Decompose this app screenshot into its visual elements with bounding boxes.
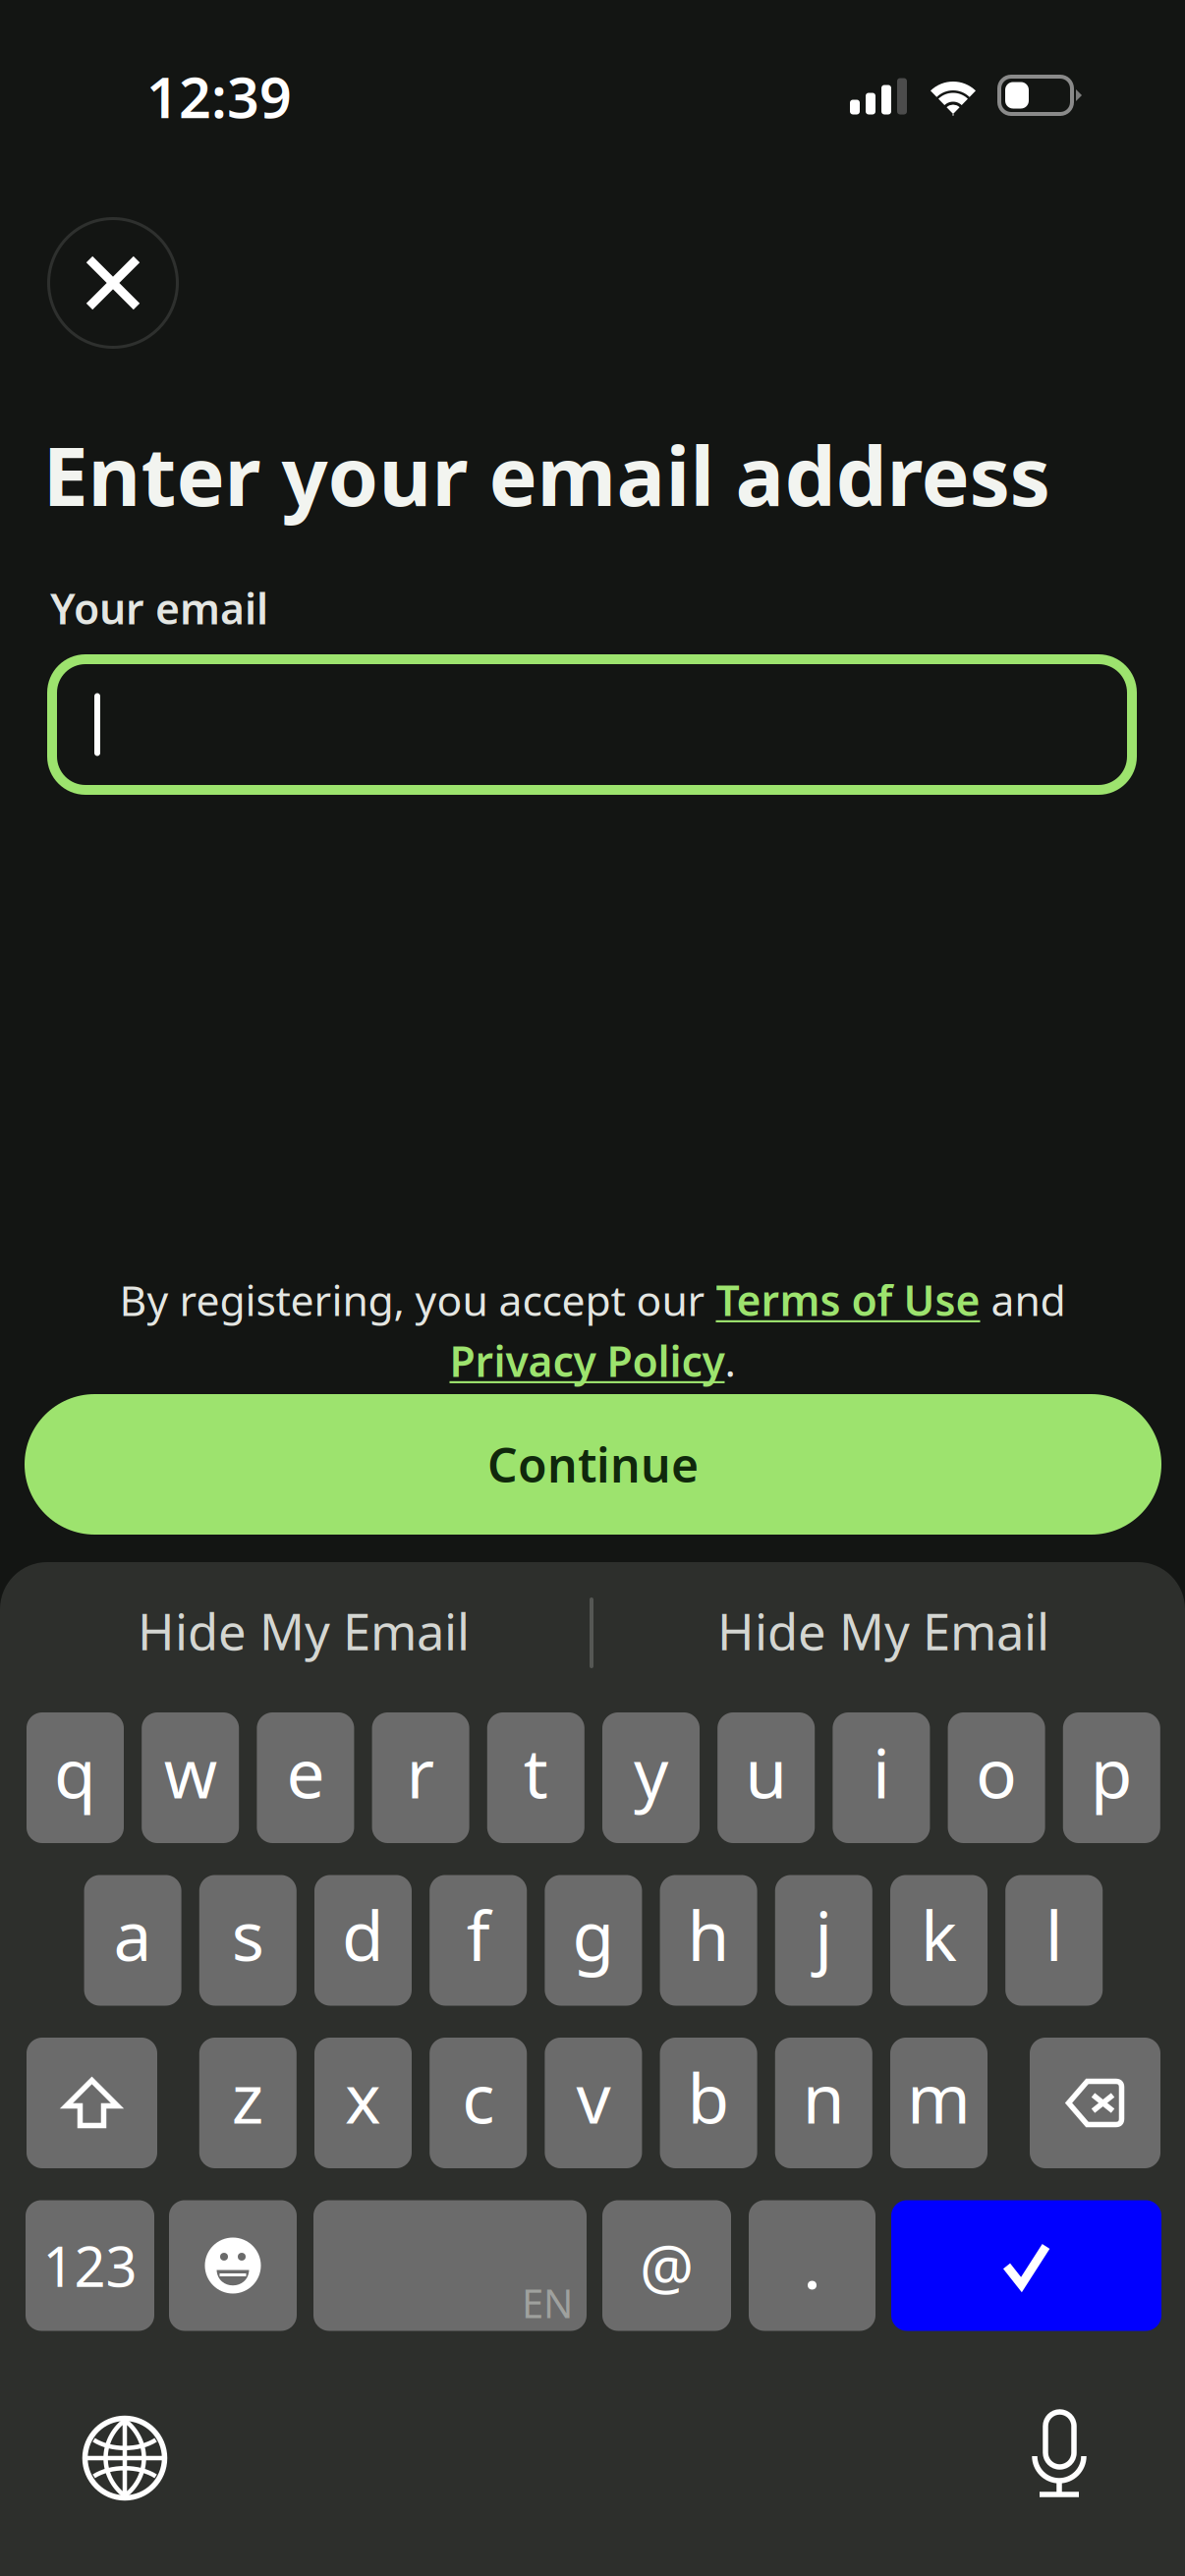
staticText: s [232, 1889, 264, 1980]
staticText: @ [640, 2226, 694, 2306]
button[interactable]: v [545, 2038, 642, 2168]
button[interactable]: f [430, 1875, 527, 2006]
button[interactable]: Shift [27, 2038, 157, 2168]
staticText: h [687, 1889, 730, 1980]
staticText: 12:39 [146, 59, 292, 134]
button[interactable]: h [660, 1875, 757, 2006]
staticText: w [164, 1727, 217, 1817]
button[interactable]: l [1005, 1875, 1103, 2006]
button[interactable]: j [775, 1875, 872, 2006]
staticText: r [406, 1727, 435, 1817]
staticText: x [345, 2052, 381, 2142]
button[interactable]: Space [313, 2200, 587, 2331]
staticText: b [687, 2052, 730, 2142]
staticText: and [980, 1272, 1066, 1328]
staticText: f [466, 1889, 490, 1980]
staticText: e [286, 1727, 325, 1817]
button[interactable]: Period [749, 2200, 875, 2331]
staticText: i [872, 1727, 890, 1817]
button[interactable]: Hide My Email [608, 1580, 1158, 1682]
button[interactable]: Dictation [1000, 2396, 1118, 2514]
button[interactable]: n [775, 2038, 872, 2168]
button[interactable]: Emoji [169, 2200, 297, 2331]
button[interactable]: Continue [25, 1394, 1161, 1535]
staticText: k [921, 1889, 957, 1980]
button[interactable]: x [314, 2038, 412, 2168]
staticText: z [232, 2052, 264, 2142]
button[interactable]: @ [602, 2200, 731, 2331]
button[interactable]: Delete [1030, 2038, 1160, 2168]
staticText: t [524, 1727, 548, 1817]
button[interactable]: z [199, 2038, 297, 2168]
button[interactable]: q [27, 1712, 124, 1843]
staticText: Hide My Email [717, 1598, 1049, 1664]
button[interactable]: Return [891, 2200, 1161, 2331]
button[interactable]: g [545, 1875, 642, 2006]
button[interactable]: a [84, 1875, 181, 2006]
staticText: n [803, 2052, 845, 2142]
button[interactable]: o [948, 1712, 1045, 1843]
staticText: By registering, you accept our [119, 1272, 716, 1328]
staticText: j [815, 1889, 833, 1980]
staticText: d [342, 1889, 384, 1980]
staticText: y [634, 1727, 668, 1817]
staticText: l [1045, 1889, 1063, 1980]
staticText: Hide My Email [138, 1598, 470, 1664]
staticText: EN [522, 2277, 573, 2329]
staticText: Privacy Policy [450, 1333, 725, 1389]
staticText: . [725, 1333, 735, 1389]
staticText: m [907, 2052, 971, 2142]
button[interactable]: Hide My Email [28, 1580, 579, 1682]
button[interactable]: i [833, 1712, 930, 1843]
button[interactable]: p [1063, 1712, 1160, 1843]
button[interactable]: Close [49, 219, 177, 347]
staticText: v [576, 2052, 611, 2142]
button[interactable]: u [717, 1712, 815, 1843]
staticText: 123 [43, 2229, 137, 2302]
button[interactable]: w [142, 1712, 239, 1843]
staticText: g [572, 1889, 615, 1980]
staticText: Enter your email address [43, 421, 1050, 528]
button[interactable]: 123 [26, 2200, 154, 2331]
staticText: u [745, 1727, 787, 1817]
staticText: Your email [50, 580, 268, 636]
button[interactable]: m [890, 2038, 987, 2168]
staticText: Continue [487, 1433, 699, 1496]
staticText: a [114, 1889, 152, 1980]
button[interactable]: s [199, 1875, 297, 2006]
staticText: p [1090, 1727, 1133, 1817]
button[interactable]: b [660, 2038, 757, 2168]
button[interactable]: c [430, 2038, 527, 2168]
button[interactable]: e [257, 1712, 354, 1843]
button[interactable]: k [890, 1875, 987, 2006]
button[interactable]: r [372, 1712, 469, 1843]
button[interactable]: t [487, 1712, 584, 1843]
button[interactable]: y [602, 1712, 700, 1843]
button[interactable]: Switch keyboard [66, 2399, 184, 2517]
staticText: Terms of Use [716, 1272, 980, 1328]
staticText: q [54, 1727, 96, 1817]
staticText: o [976, 1727, 1017, 1817]
button[interactable]: d [314, 1875, 412, 2006]
staticText: c [462, 2052, 494, 2142]
